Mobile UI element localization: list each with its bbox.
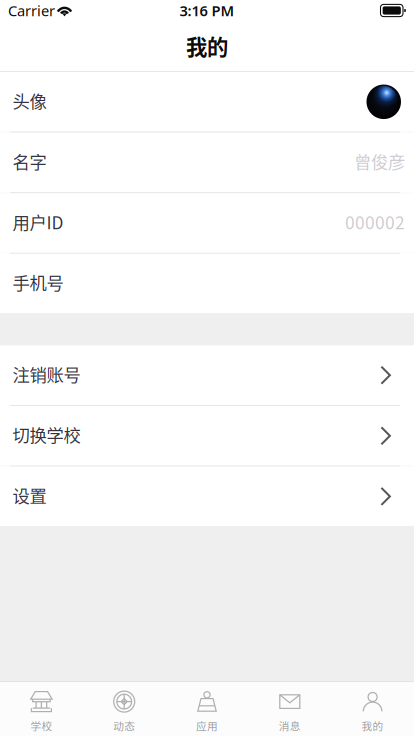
staticText: 动态 [113, 718, 135, 733]
staticText: Carrier [8, 1, 55, 20]
staticText: 名字 [12, 149, 46, 174]
button[interactable]: 头像 [0, 72, 414, 132]
button[interactable]: 动态 [83, 682, 166, 736]
button[interactable]: 应用 [166, 682, 248, 736]
staticText: 我的 [362, 718, 384, 733]
button[interactable]: 名字 [0, 133, 414, 192]
staticText: 用户ID [12, 209, 63, 234]
staticText: 我的 [186, 31, 228, 61]
staticText: 手机号 [12, 270, 63, 295]
staticText: 消息 [279, 718, 301, 733]
staticText: 曾俊彦 [354, 149, 405, 174]
button[interactable]: 用户ID [0, 193, 414, 253]
button[interactable]: 我的 [331, 682, 414, 736]
staticText: 000002 [345, 209, 405, 234]
staticText: 切换学校 [12, 422, 80, 447]
staticText: 注销账号 [12, 361, 80, 386]
button[interactable]: 设置 [0, 467, 414, 526]
staticText: 3:16 PM [179, 1, 234, 20]
staticText: 设置 [12, 483, 46, 508]
button[interactable]: 手机号 [0, 254, 414, 313]
button[interactable]: 注销账号 [0, 345, 414, 405]
staticText: 应用 [196, 718, 218, 733]
staticText: 头像 [12, 88, 46, 113]
button[interactable]: 学校 [0, 682, 83, 736]
staticText: 学校 [30, 718, 52, 733]
button[interactable]: 切换学校 [0, 406, 414, 466]
button[interactable]: 消息 [248, 682, 331, 736]
